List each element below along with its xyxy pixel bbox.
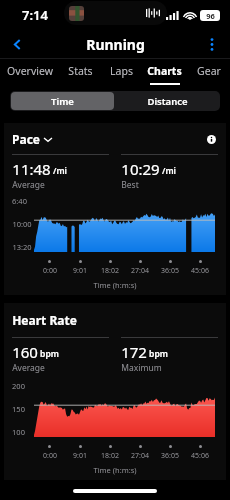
staticText: /mi bbox=[53, 165, 67, 177]
staticText: Gear bbox=[197, 64, 221, 78]
staticText: Heart Rate bbox=[12, 312, 77, 328]
staticText: 6:40 bbox=[12, 196, 27, 206]
staticText: 36:05 bbox=[161, 266, 179, 276]
staticText: Time (h:m:s) bbox=[93, 280, 137, 290]
staticText: /mi bbox=[162, 165, 176, 177]
staticText: Average bbox=[12, 362, 45, 374]
staticText: 160 bbox=[12, 342, 38, 362]
staticText: 0:00 bbox=[43, 266, 57, 276]
staticText: 10:00 bbox=[12, 219, 32, 229]
staticText: 96 bbox=[206, 11, 215, 21]
staticText: 11:48 bbox=[12, 159, 51, 179]
button[interactable]: Stats bbox=[59, 59, 101, 86]
staticText: Laps bbox=[110, 64, 133, 78]
staticText: 10:29 bbox=[121, 159, 160, 179]
staticText: Maximum bbox=[121, 362, 162, 374]
staticText: 150 bbox=[12, 404, 25, 414]
button[interactable]: Gear bbox=[188, 59, 230, 86]
staticText: Time bbox=[51, 95, 74, 108]
button[interactable]: Charts bbox=[141, 59, 188, 86]
staticText: 18:02 bbox=[101, 266, 119, 276]
staticText: 27:04 bbox=[131, 266, 149, 276]
staticText: Distance bbox=[147, 95, 188, 108]
staticText: 100 bbox=[12, 427, 25, 437]
staticText: 172 bbox=[121, 342, 147, 362]
staticText: 13:20 bbox=[12, 242, 32, 252]
staticText: 18:02 bbox=[101, 451, 119, 461]
staticText: 36:05 bbox=[161, 451, 179, 461]
button[interactable]: Back bbox=[5, 32, 29, 56]
staticText: Best bbox=[121, 179, 139, 191]
staticText: 45:06 bbox=[191, 266, 209, 276]
staticText: Running bbox=[86, 35, 145, 54]
staticText: Overview bbox=[7, 64, 53, 78]
button[interactable]: Info bbox=[204, 132, 218, 146]
staticText: 0:00 bbox=[43, 451, 57, 461]
staticText: Average bbox=[12, 179, 45, 191]
button[interactable]: More options bbox=[200, 32, 224, 56]
staticText: Pace bbox=[12, 131, 40, 147]
button[interactable]: Distance bbox=[115, 91, 220, 111]
staticText: Charts bbox=[147, 64, 182, 78]
staticText: bpm bbox=[40, 348, 59, 360]
staticText: Stats bbox=[68, 64, 93, 78]
staticText: Time (h:m:s) bbox=[93, 465, 137, 475]
button[interactable]: Laps bbox=[101, 59, 141, 86]
staticText: 45:06 bbox=[191, 451, 209, 461]
button[interactable]: Time bbox=[11, 92, 114, 110]
button[interactable]: Pace bbox=[12, 131, 52, 147]
staticText: bpm bbox=[149, 348, 168, 360]
staticText: 27:04 bbox=[131, 451, 149, 461]
staticText: 200 bbox=[12, 381, 25, 391]
button[interactable]: Overview bbox=[0, 59, 59, 86]
staticText: 9:01 bbox=[73, 266, 87, 276]
staticText: 9:01 bbox=[73, 451, 87, 461]
staticText: 7:14 bbox=[22, 6, 48, 24]
